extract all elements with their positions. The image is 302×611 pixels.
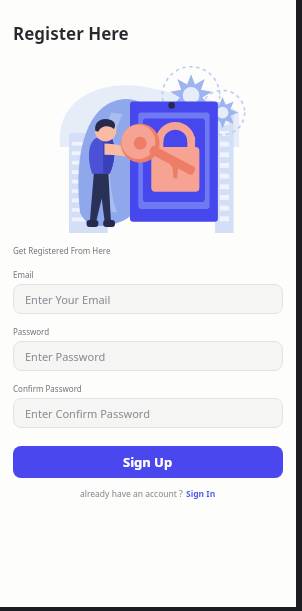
staticText: Sign In: [186, 488, 216, 500]
button[interactable]: Sign Up: [13, 446, 283, 478]
button[interactable]: Enter Password: [13, 341, 283, 371]
staticText: Confirm Password: [13, 383, 82, 394]
button[interactable]: Sign In: [186, 488, 216, 500]
button[interactable]: Enter Your Email: [13, 284, 283, 314]
staticText: Email: [13, 269, 34, 280]
staticText: Get Registered From Here: [13, 245, 111, 256]
staticText: Enter Confirm Password: [25, 406, 150, 421]
staticText: Password: [13, 326, 50, 337]
staticText: Enter Password: [25, 349, 106, 364]
staticText: Sign Up: [123, 453, 173, 471]
staticText: already have an account ?: [80, 488, 183, 500]
staticText: Enter Your Email: [25, 292, 111, 307]
staticText: Register Here: [13, 22, 129, 45]
button[interactable]: Enter Confirm Password: [13, 398, 283, 428]
